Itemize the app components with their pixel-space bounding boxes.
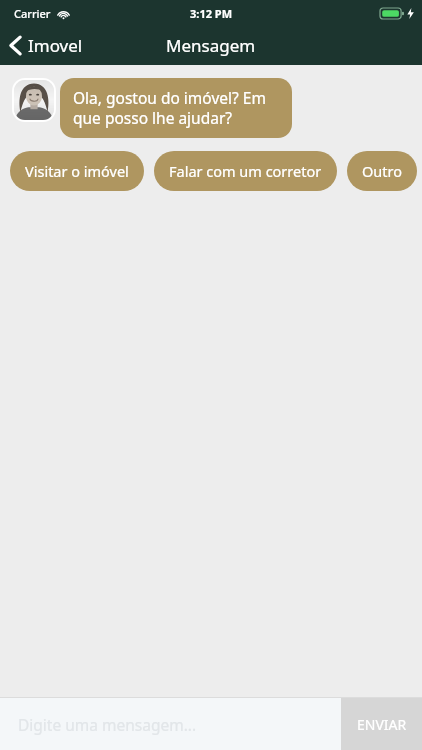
staticText: Carrier (14, 6, 51, 21)
staticText: Ola, gostou do imóvel? Em que posso lhe … (73, 87, 279, 129)
staticText: Falar com um corretor (169, 161, 322, 181)
button[interactable]: Digite uma mensagem... (0, 698, 341, 750)
staticText: Visitar o imóvel (25, 161, 129, 181)
staticText: Imovel (28, 34, 83, 57)
button[interactable]: Ola, gostou do imóvel? Em que posso lhe … (60, 78, 292, 138)
staticText: ENVIAR (357, 715, 407, 734)
staticText: Mensagem (166, 34, 256, 57)
button[interactable]: Falar com um corretor (154, 151, 337, 191)
button[interactable]: Back (0, 30, 95, 61)
staticText: 3:12 PM (190, 6, 233, 21)
button[interactable]: Visitar o imóvel (10, 151, 144, 191)
button[interactable]: ENVIAR (341, 698, 422, 750)
button[interactable]: Outro (347, 151, 417, 191)
other: Back (10, 36, 21, 55)
staticText: Outro (362, 161, 402, 181)
staticText: Digite uma mensagem... (18, 714, 197, 735)
